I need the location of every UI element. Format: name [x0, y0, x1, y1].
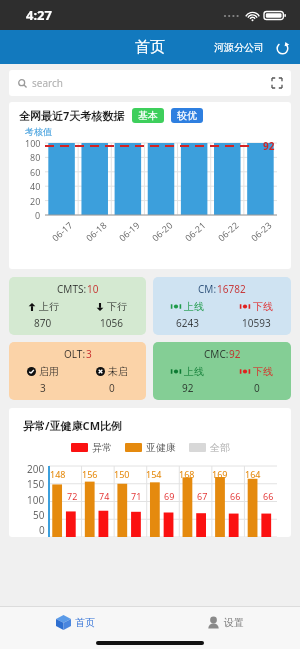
button[interactable]: 首页	[0, 607, 150, 637]
staticText: 74	[99, 490, 110, 502]
staticText: 下行	[107, 300, 127, 313]
staticText: 60	[30, 166, 41, 178]
staticText: 66	[230, 490, 241, 502]
staticText: search	[32, 76, 63, 90]
button[interactable]: 河源分公司	[212, 37, 266, 58]
staticText: 3	[86, 347, 92, 361]
staticText: 首页	[135, 38, 165, 57]
staticText: 168	[179, 468, 195, 480]
staticText: 150	[114, 468, 130, 480]
button[interactable]: Refresh	[272, 38, 292, 58]
staticText: 4:27	[26, 6, 52, 24]
staticText: 16782	[217, 282, 246, 296]
staticText: 06-17	[49, 218, 75, 243]
staticText: 3	[40, 381, 46, 394]
staticText: 06-18	[83, 218, 109, 243]
staticText: 基本	[138, 109, 158, 122]
staticText: 72	[67, 490, 78, 502]
staticText: 66	[263, 490, 274, 502]
staticText: 92	[229, 347, 241, 361]
staticText: 上行	[39, 300, 59, 313]
staticText: 河源分公司	[214, 41, 264, 54]
staticText: 下线	[253, 365, 273, 378]
staticText: 0	[109, 381, 115, 394]
staticText: 0	[39, 523, 45, 537]
staticText: 50	[33, 508, 45, 522]
staticText: 06-21	[182, 218, 208, 243]
staticText: 上线	[184, 300, 204, 313]
staticText: 06-23	[248, 218, 274, 243]
staticText: 100	[27, 493, 45, 507]
staticText: 0	[254, 381, 260, 394]
staticText: 0	[35, 209, 41, 221]
button[interactable]: CMTS:	[9, 277, 146, 335]
staticText: 设置	[224, 616, 244, 629]
staticText: 上线	[184, 365, 204, 378]
staticText: 异常	[92, 441, 112, 454]
button[interactable]: 基本	[132, 108, 164, 123]
staticText: 164	[245, 468, 261, 480]
staticText: 全部	[210, 441, 230, 454]
staticText: OLT:	[64, 347, 86, 361]
staticText: 200	[27, 462, 45, 476]
staticText: CMC:	[204, 347, 229, 361]
staticText: 亚健康	[146, 441, 176, 454]
staticText: 全网最近7天考核数据	[19, 108, 125, 123]
staticText: 10	[87, 282, 99, 296]
staticText: 6243	[176, 316, 199, 329]
staticText: 92	[182, 381, 194, 394]
staticText: 首页	[75, 616, 95, 629]
button[interactable]: 较优	[171, 108, 203, 123]
staticText: 69	[164, 490, 175, 502]
staticText: 10593	[242, 316, 271, 329]
staticText: 150	[27, 477, 45, 491]
staticText: 100	[25, 137, 41, 149]
staticText: 870	[34, 316, 52, 329]
staticText: 169	[212, 468, 228, 480]
staticText: CMTS:	[57, 282, 87, 296]
staticText: 20	[30, 195, 41, 207]
staticText: 06-19	[116, 218, 142, 243]
button[interactable]: OLT:	[9, 342, 146, 400]
staticText: CM:	[198, 282, 217, 296]
staticText: 148	[50, 468, 66, 480]
button[interactable]: CM:	[153, 277, 291, 335]
staticText: 较优	[177, 109, 197, 122]
staticText: 92	[263, 139, 275, 153]
staticText: 71	[131, 490, 142, 502]
staticText: 异常/亚健康CM比例	[23, 418, 122, 433]
staticText: 未启	[108, 365, 128, 378]
staticText: 156	[82, 468, 98, 480]
staticText: 06-20	[149, 218, 175, 243]
button[interactable]: search	[9, 70, 291, 96]
staticText: 启用	[39, 365, 59, 378]
staticText: 40	[30, 180, 41, 192]
staticText: 154	[146, 468, 162, 480]
staticText: 1056	[100, 316, 123, 329]
staticText: 考核值	[25, 126, 52, 137]
staticText: 80	[30, 151, 41, 163]
staticText: 06-22	[215, 218, 241, 243]
staticText: 下线	[253, 300, 273, 313]
button[interactable]: CMC:	[153, 342, 291, 400]
button[interactable]: 设置	[150, 607, 300, 637]
staticText: 67	[197, 490, 208, 502]
